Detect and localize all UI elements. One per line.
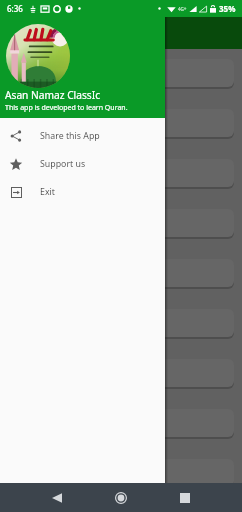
button[interactable]: Home (89, 483, 153, 512)
button[interactable] (8, 409, 234, 437)
other: Back (52, 493, 62, 503)
button[interactable]: Recents (153, 483, 217, 512)
button[interactable] (8, 159, 234, 187)
staticText: 4G+ (178, 6, 187, 12)
staticText: Support us (40, 158, 86, 170)
button[interactable] (8, 109, 234, 137)
button[interactable]: Back (25, 483, 89, 512)
button[interactable]: Exit (0, 178, 165, 206)
staticText: Asan Namaz ClassIc (5, 88, 101, 102)
other: Home (115, 492, 127, 504)
staticText: 6:36 (7, 3, 23, 14)
staticText: Exit (40, 186, 55, 198)
button[interactable] (8, 59, 234, 87)
button[interactable] (8, 209, 234, 237)
button[interactable] (8, 259, 234, 287)
button[interactable]: Support us (0, 150, 165, 178)
button[interactable] (8, 359, 234, 387)
staticText: Share this App (40, 130, 100, 142)
button[interactable]: Share this App (0, 122, 165, 150)
staticText: 35% (219, 3, 236, 14)
button[interactable] (8, 459, 234, 487)
button[interactable] (8, 309, 234, 337)
staticText: This app is developed to learn Quran. (5, 103, 128, 113)
